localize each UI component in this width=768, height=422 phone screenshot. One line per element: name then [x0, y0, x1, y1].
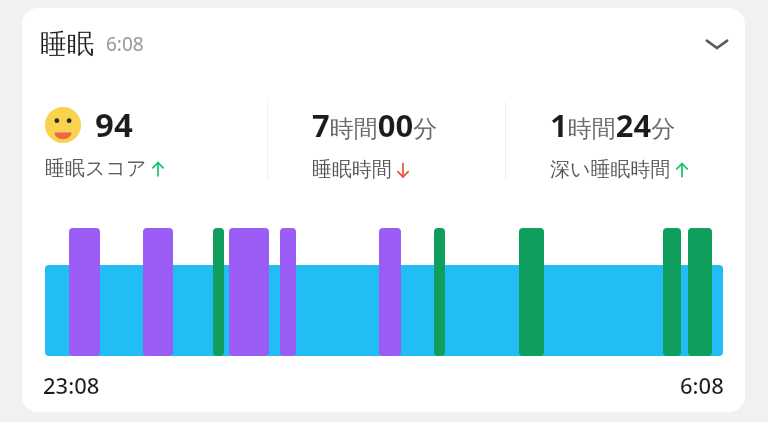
button[interactable]: 1時間24分: [506, 88, 745, 182]
staticText: 睡眠時間: [312, 157, 392, 182]
button[interactable]: [22, 220, 745, 372]
button[interactable]: 7時間00分: [268, 88, 505, 182]
button[interactable]: 睡眠: [22, 8, 745, 80]
staticText: 23:08: [43, 370, 100, 400]
staticText: 7時間00分: [312, 104, 438, 146]
staticText: 1時間24分: [550, 104, 676, 146]
staticText: 深い睡眠時間: [550, 157, 671, 182]
staticText: 6:08: [106, 31, 144, 57]
button[interactable]: Collapse: [689, 16, 745, 72]
staticText: 睡眠: [40, 27, 94, 61]
staticText: 94: [95, 102, 133, 147]
button[interactable]: 94: [22, 88, 267, 181]
staticText: 6:08: [680, 370, 724, 400]
staticText: 睡眠スコア: [45, 156, 147, 181]
